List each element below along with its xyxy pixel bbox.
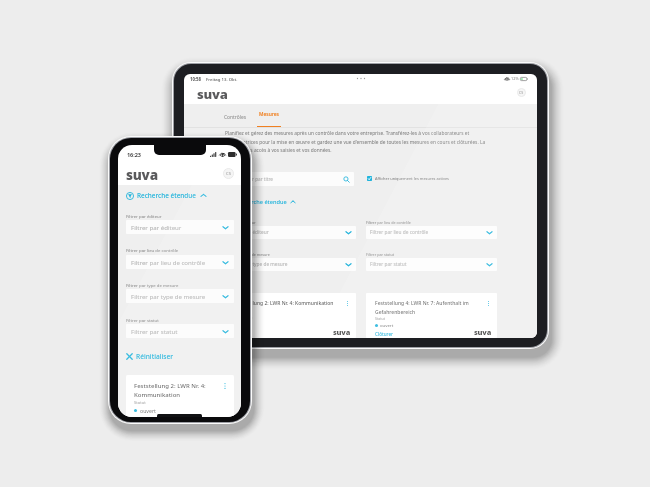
staticText: Filtrer par éditeur bbox=[131, 223, 222, 231]
staticText: ouvert bbox=[380, 322, 394, 328]
staticText: Feststellung 4: LWR Nr. 7: Aufenthalt im… bbox=[375, 300, 482, 315]
staticText: suva bbox=[126, 166, 158, 184]
button[interactable]: More options bbox=[344, 300, 351, 307]
staticText: Afficher uniquement les mesures actives bbox=[375, 176, 449, 181]
staticText: Rechercher par titre bbox=[229, 176, 343, 182]
staticText: 10:58 bbox=[190, 76, 202, 82]
staticText: Filtrer par type de mesure bbox=[126, 282, 179, 288]
staticText: Planifiez et gérez des mesures après un … bbox=[225, 130, 489, 153]
button[interactable]: Filtrer par éditeur bbox=[225, 226, 356, 239]
staticText: Filtrer par éditeur bbox=[225, 220, 256, 225]
button[interactable]: Filtrer par statut bbox=[366, 258, 497, 271]
button[interactable]: Réinitialiser bbox=[126, 351, 174, 361]
staticText: Filtrer par type de mesure bbox=[131, 292, 222, 300]
staticText: ouvert bbox=[140, 407, 156, 414]
button[interactable]: Feststellung 4: LWR Nr. 7: Aufenthalt im… bbox=[366, 293, 497, 338]
staticText: Filtrer par lieu de contrôle bbox=[131, 258, 222, 266]
button[interactable]: CS bbox=[223, 168, 234, 179]
staticText: Filtrer par lieu de contrôle bbox=[370, 229, 486, 236]
button[interactable]: Afficher uniquement les mesures actives bbox=[367, 176, 449, 181]
button[interactable]: Mesures bbox=[257, 111, 281, 127]
staticText: Filtrer par lieu de contrôle bbox=[126, 247, 179, 253]
button[interactable]: Clôturer bbox=[234, 331, 253, 337]
staticText: 16:23 bbox=[127, 151, 141, 159]
staticText: suva bbox=[474, 327, 492, 337]
button[interactable]: Filtrer par éditeur bbox=[126, 220, 234, 234]
staticText: Feststellung 2: LWR Nr. 4: Kommunikation bbox=[134, 382, 218, 399]
staticText: CS bbox=[519, 90, 524, 95]
staticText: Statut bbox=[134, 400, 146, 406]
staticText: Feststellung 2: LWR Nr. 4: Kommunikation bbox=[234, 300, 341, 307]
button[interactable]: CS bbox=[517, 88, 526, 97]
button[interactable]: Clôturer bbox=[375, 331, 394, 337]
staticText: 12% bbox=[511, 76, 519, 81]
button[interactable]: Filtrer par type de mesure bbox=[126, 289, 234, 303]
staticText: suva bbox=[333, 327, 351, 337]
button[interactable]: Filtrer par type de mesure bbox=[225, 258, 356, 271]
button[interactable]: Recherche étendue bbox=[126, 190, 207, 201]
staticText: CS bbox=[226, 171, 231, 177]
staticText: suva bbox=[197, 85, 228, 103]
staticText: Filtrer par type de mesure bbox=[225, 252, 270, 257]
staticText: Mesures bbox=[259, 111, 279, 118]
staticText: Filtrer par statut bbox=[366, 252, 395, 257]
staticText: Recherche étendue bbox=[137, 191, 196, 200]
staticText: ouvert bbox=[239, 314, 253, 320]
staticText: Réinitialiser bbox=[136, 352, 174, 361]
staticText: Contrôles bbox=[224, 114, 247, 121]
staticText: Filtrer par lieu de contrôle bbox=[366, 220, 411, 225]
staticText: Freitag 13. Okt. bbox=[206, 76, 238, 82]
staticText: Filtrer par statut bbox=[131, 327, 222, 335]
staticText: Statut bbox=[234, 308, 245, 313]
button[interactable]: Filtrer par statut bbox=[126, 324, 234, 338]
staticText: Recherche étendue bbox=[235, 198, 287, 206]
button[interactable]: Feststellung 2: LWR Nr. 4: Kommunikation bbox=[126, 375, 234, 417]
staticText: Statut bbox=[375, 316, 386, 321]
staticText: Filtrer par éditeur bbox=[126, 213, 162, 219]
button[interactable]: Feststellung 2: LWR Nr. 4: Kommunikation bbox=[225, 293, 356, 338]
button[interactable]: Rechercher par titre bbox=[225, 172, 354, 186]
button[interactable]: Filtrer par lieu de contrôle bbox=[366, 226, 497, 239]
button[interactable]: More options bbox=[221, 382, 229, 390]
staticText: Filtrer par statut bbox=[370, 261, 486, 268]
button[interactable]: More options bbox=[485, 300, 492, 307]
button[interactable]: Filtrer par lieu de contrôle bbox=[126, 255, 234, 269]
staticText: Filtrer par statut bbox=[126, 317, 159, 323]
staticText: Filtrer par éditeur bbox=[229, 229, 345, 236]
staticText: Filtrer par type de mesure bbox=[229, 261, 345, 268]
button[interactable]: Contrôles bbox=[222, 111, 248, 123]
button[interactable]: Recherche étendue bbox=[225, 197, 296, 207]
